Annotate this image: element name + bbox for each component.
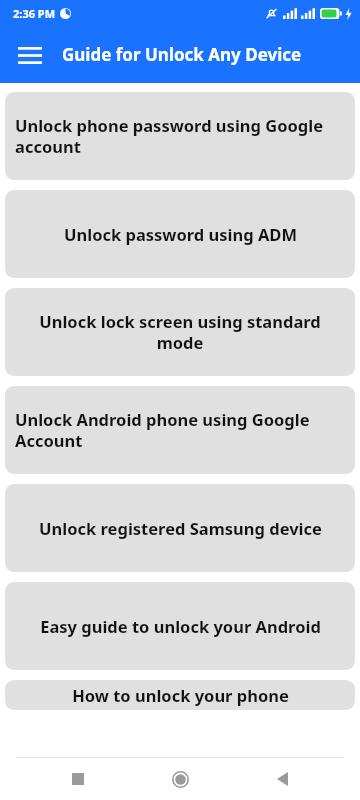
staticText: Unlock Android phone using Google Accoun… [15, 408, 345, 452]
button[interactable]: How to unlock your phone [5, 680, 355, 710]
button[interactable]: Unlock registered Samsung device [5, 484, 355, 572]
staticText: 2:36 PM [13, 6, 56, 21]
button[interactable]: Unlock password using ADM [5, 190, 355, 278]
button[interactable]: Unlock Android phone using Google Accoun… [5, 386, 355, 474]
button[interactable]: Easy guide to unlock your Android [5, 582, 355, 670]
button[interactable]: Unlock lock screen using standard mode [5, 288, 355, 376]
staticText: Unlock lock screen using standard mode [15, 310, 345, 354]
button[interactable]: Unlock phone password using Google accou… [5, 92, 355, 180]
button[interactable]: Home [156, 758, 204, 800]
button[interactable]: Back [258, 758, 306, 800]
staticText: Easy guide to unlock your Android [40, 615, 321, 637]
staticText: How to unlock your phone [72, 684, 289, 706]
button[interactable]: Recent apps [54, 758, 102, 800]
staticText: Unlock password using ADM [64, 223, 297, 245]
button[interactable]: Open navigation menu [10, 35, 50, 75]
staticText: Guide for Unlock Any Device [62, 43, 302, 66]
staticText: Unlock phone password using Google accou… [15, 114, 345, 158]
staticText: Unlock registered Samsung device [39, 517, 322, 539]
